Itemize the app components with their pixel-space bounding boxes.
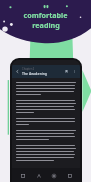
button[interactable]: Bookmark [64,69,69,74]
button[interactable]: Back [12,65,80,78]
button[interactable]: Library [17,170,28,181]
button[interactable]: Back [15,69,20,74]
button[interactable]: Brightness [48,170,59,181]
staticText: Chapter 4 [22,67,34,71]
staticText: reading [32,20,60,30]
staticText: comfortable [23,10,68,20]
staticText: The Awakening [22,71,47,76]
button[interactable]: Settings [64,170,75,181]
button[interactable]: Font size [33,170,44,181]
button[interactable]: More options [72,69,77,74]
